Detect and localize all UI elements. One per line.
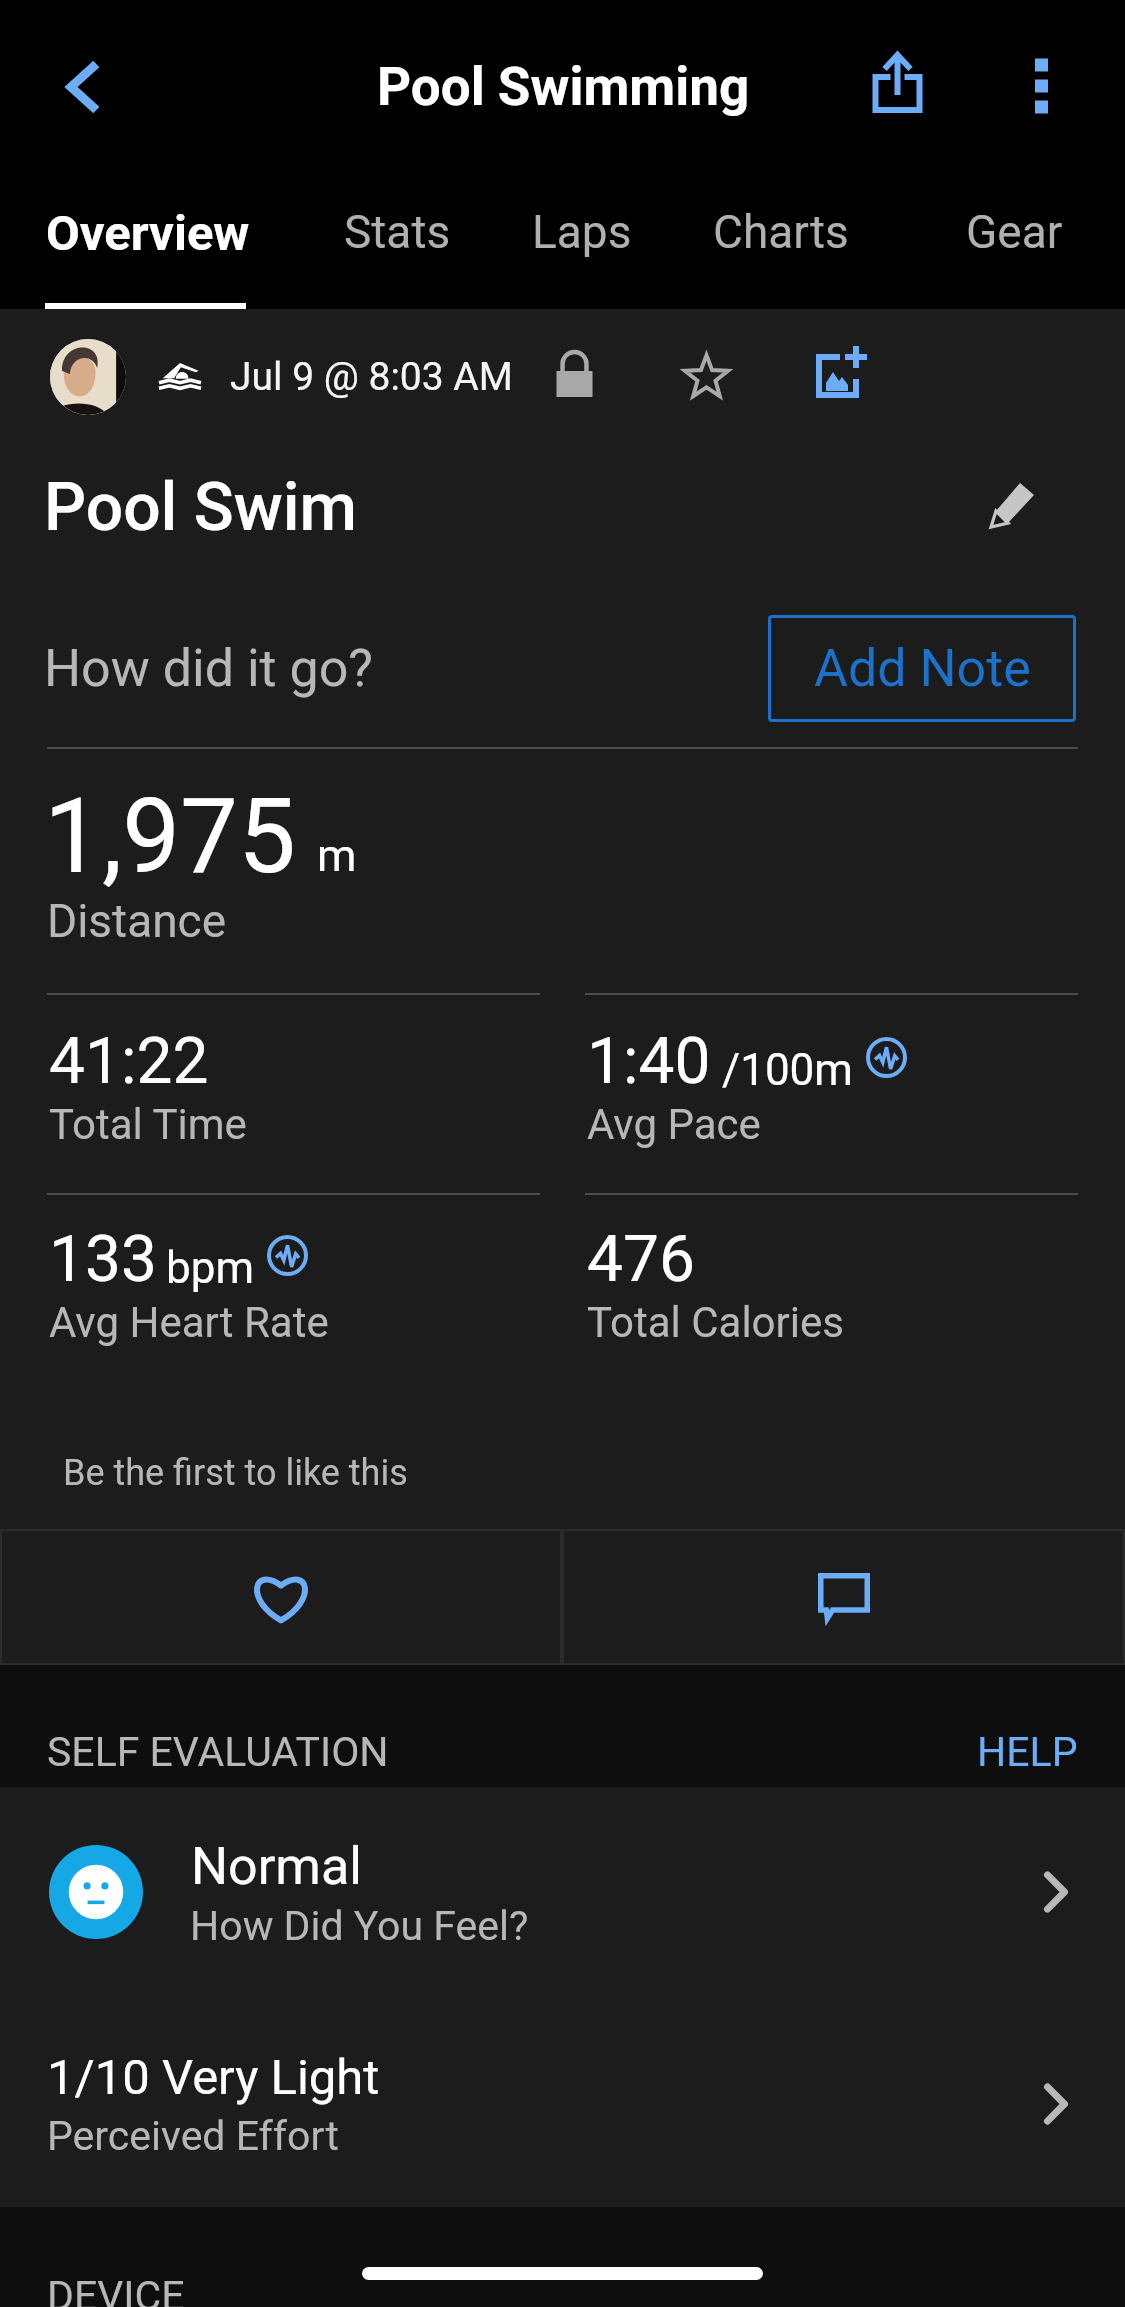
button[interactable]: More options <box>984 16 1099 156</box>
button[interactable]: Privacy <box>527 332 622 427</box>
staticText: DEVICE <box>47 2272 185 2307</box>
button[interactable]: Share <box>840 16 955 156</box>
button[interactable]: Overview <box>19 170 273 309</box>
staticText: Gear <box>966 205 1063 259</box>
staticText: Laps <box>532 205 632 259</box>
staticText: Total Calories <box>587 1298 844 1347</box>
staticText: Normal <box>191 1836 362 1897</box>
staticText: Avg Heart Rate <box>49 1298 329 1347</box>
staticText: m <box>317 829 357 882</box>
staticText: /100m <box>722 1044 853 1096</box>
staticText: Avg Pace <box>587 1100 761 1149</box>
button[interactable]: 1/10 Very Light <box>0 1997 1125 2207</box>
button[interactable]: Edit <box>968 461 1068 561</box>
staticText: bpm <box>166 1242 254 1294</box>
staticText: How Did You Feel? <box>190 1902 529 1950</box>
staticText: Pool Swimming <box>377 56 750 118</box>
button[interactable]: Add photo <box>790 332 885 427</box>
staticText: 41:22 <box>49 1024 209 1099</box>
staticText: Add Note <box>814 638 1031 699</box>
button[interactable]: Gear <box>939 170 1091 309</box>
staticText: Charts <box>713 205 849 259</box>
staticText: Pool Swim <box>44 469 358 546</box>
button[interactable]: Stats <box>317 170 476 309</box>
staticText: 1:40 <box>587 1024 711 1099</box>
staticText: 133 <box>49 1222 157 1297</box>
staticText: Be the first to like this <box>63 1452 408 1494</box>
button[interactable]: Laps <box>505 170 655 309</box>
button[interactable]: Favorite <box>659 332 754 427</box>
staticText: Distance <box>47 894 227 948</box>
button[interactable]: Add Note <box>768 615 1076 722</box>
button[interactable]: Charts <box>686 170 876 309</box>
staticText: Overview <box>46 205 250 262</box>
button[interactable]: Comment <box>562 1529 1125 1665</box>
button[interactable]: Like <box>0 1529 562 1665</box>
staticText: 476 <box>587 1222 695 1297</box>
staticText: HELP <box>977 1728 1078 1776</box>
button[interactable]: Back <box>22 17 142 157</box>
staticText: SELF EVALUATION <box>47 1728 389 1776</box>
button[interactable]: Normal <box>0 1787 1125 1997</box>
staticText: Stats <box>344 205 451 259</box>
staticText: Total Time <box>49 1100 247 1149</box>
staticText: Perceived Effort <box>47 2112 339 2160</box>
staticText: Jul 9 @ 8:03 AM <box>230 354 513 400</box>
staticText: 1,975 <box>44 776 296 897</box>
staticText: How did it go? <box>44 638 373 699</box>
staticText: 1/10 Very Light <box>47 2049 380 2106</box>
